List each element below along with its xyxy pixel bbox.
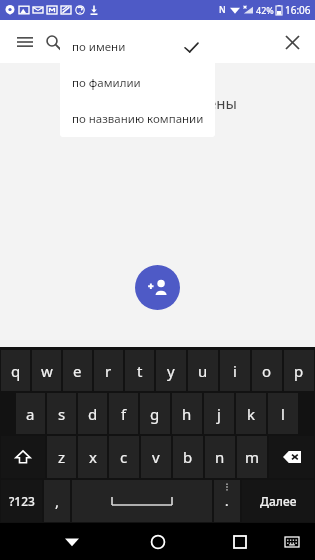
button[interactable]: a (16, 393, 45, 434)
staticText: , (55, 491, 60, 511)
button[interactable]: s (47, 393, 76, 434)
button[interactable]: f (109, 393, 138, 434)
button[interactable]: по имени (60, 29, 215, 65)
button[interactable]: q (1, 350, 30, 391)
button[interactable]: g (140, 393, 170, 434)
button[interactable]: o (252, 350, 282, 391)
button[interactable]: Shift (1, 436, 45, 478)
staticText: f (121, 404, 127, 424)
staticText: p (294, 361, 304, 381)
staticText: i (233, 361, 237, 381)
staticText: q (11, 361, 21, 381)
button[interactable]: c (109, 436, 139, 478)
staticText: b (183, 447, 193, 467)
staticText: d (88, 404, 98, 424)
button[interactable]: h (172, 393, 202, 434)
staticText: g (150, 404, 160, 424)
staticText: y (167, 361, 175, 381)
button[interactable]: по названию компании (60, 101, 215, 137)
staticText: u (198, 361, 208, 381)
button[interactable]: Недавние (223, 525, 257, 559)
staticText: t (137, 361, 143, 381)
button[interactable]: i (220, 350, 250, 391)
staticText: z (58, 447, 66, 467)
staticText: w (41, 361, 53, 381)
staticText: c (120, 447, 128, 467)
button[interactable]: d (78, 393, 107, 434)
button[interactable]: n (205, 436, 235, 478)
staticText: N (219, 4, 226, 16)
staticText: 42% (256, 4, 274, 16)
staticText: ?123 (9, 493, 35, 509)
staticText: m (245, 447, 260, 467)
staticText: Далее (260, 493, 297, 509)
staticText: l (281, 404, 285, 424)
button[interactable]: ?123 (1, 480, 42, 522)
staticText: o (262, 361, 272, 381)
staticText: e (73, 361, 82, 381)
button[interactable]: k (236, 393, 266, 434)
staticText: . (225, 492, 229, 510)
button[interactable]: x (78, 436, 107, 478)
staticText: s (58, 404, 66, 424)
staticText: 16:06 (285, 3, 311, 17)
button[interactable]: w (32, 350, 61, 391)
staticText: x (89, 447, 97, 467)
button[interactable]: . (214, 480, 240, 522)
button[interactable]: y (156, 350, 186, 391)
button[interactable]: l (268, 393, 298, 434)
button[interactable]: Backspace (269, 436, 314, 478)
button[interactable]: p (284, 350, 314, 391)
staticText: j (217, 404, 221, 424)
button[interactable]: r (94, 350, 123, 391)
staticText: по названию компании (72, 111, 204, 127)
button[interactable]: Клавиатура (277, 527, 307, 557)
button[interactable]: Далее (242, 480, 314, 522)
staticText: n (215, 447, 225, 467)
button[interactable]: Поиск (40, 29, 66, 55)
button[interactable]: Закрыть (278, 28, 306, 56)
staticText: r (105, 361, 112, 381)
button[interactable]: m (237, 436, 267, 478)
button[interactable]: по фамилии (60, 65, 215, 101)
staticText: Контакты не найдены (78, 93, 237, 113)
button[interactable]: z (47, 436, 76, 478)
staticText: k (247, 404, 256, 424)
staticText: h (182, 404, 192, 424)
button[interactable]: v (141, 436, 171, 478)
button[interactable]: Меню (12, 29, 38, 55)
staticText: a (26, 404, 35, 424)
button[interactable]: Назад (55, 525, 89, 559)
button[interactable]: t (125, 350, 154, 391)
button[interactable]: u (188, 350, 218, 391)
button[interactable]: e (63, 350, 92, 391)
button[interactable]: , (44, 480, 70, 522)
staticText: по фамилии (72, 75, 141, 91)
button[interactable]: j (204, 393, 234, 434)
staticText: v (152, 447, 160, 467)
button[interactable]: b (173, 436, 203, 478)
button[interactable]: Домой (141, 525, 175, 559)
staticText: по имени (72, 39, 126, 55)
button[interactable]: Пробел (72, 480, 212, 522)
button[interactable]: Добавить контакт (135, 265, 180, 310)
